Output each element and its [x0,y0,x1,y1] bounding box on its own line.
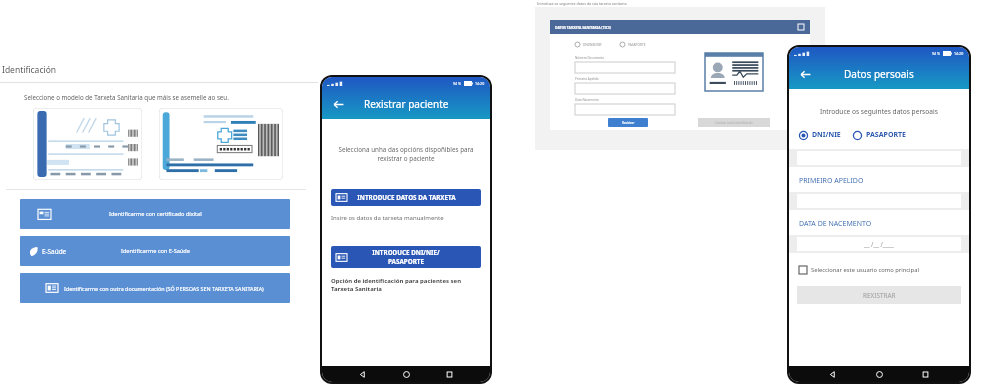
staticText: 14:20 [475,81,485,86]
button[interactable]: Back [795,64,815,84]
staticText: Rexistrar [622,121,635,125]
button[interactable]: INTRODUCE DNI/NIE/ PASAPORTE [331,246,481,268]
staticText: REXISTRAR [863,291,896,300]
other: Home [876,371,883,378]
button[interactable]: E-Saúde [20,236,290,266]
other: Recents [922,371,929,378]
button[interactable]: Seleccionar este usuario como principal [799,266,919,274]
button[interactable]: __ /__ /____ [797,237,961,251]
staticText: Número Documento [575,56,604,60]
staticText: PRIMEIRO APELIDO [799,176,864,186]
staticText: E-Saúde [42,247,67,256]
staticText: DATA DE NACEMENTO [799,219,872,229]
staticText: 14:20 [954,51,964,56]
button[interactable]: Identificarme con certificado dixital [20,199,290,229]
staticText: INTRODUCE DNI/NIE/ PASAPORTE [372,248,440,266]
button[interactable]: Back [328,94,348,114]
other: Home [403,371,410,378]
other: Back [359,371,366,378]
staticText: 94 % [453,81,462,86]
staticText: Rexistrar paciente [364,97,449,111]
staticText: Introduza os seguintes datos da súa tarx… [537,1,628,6]
staticText: INTRODUCE DATOS DA TARXETA [357,193,456,202]
staticText: Identificación [2,64,57,76]
staticText: Primeiro Apelido [575,77,599,81]
staticText: DNI/NIE/NIF [583,43,602,47]
other: Back [829,371,836,378]
staticText: Selecciona unha das opcións dispoñibles … [331,145,481,163]
staticText: Data Nacemento [575,98,599,102]
staticText: 94 % [932,51,941,56]
staticText: __ /__ /____ [864,240,894,248]
other: Recents [446,371,453,378]
staticText: Opción de identificación para pacientes … [331,277,481,293]
staticText: Identificarme con outra documentación (S… [64,285,264,292]
staticText: Introduce os seguintes datos persoais [820,107,938,116]
staticText: DNI/NIE [812,130,841,140]
staticText: Insire os datos da tarxeta manualmente [331,214,444,222]
staticText: DATOS TARXETA SANITARIA (TICS) [555,25,611,30]
button[interactable]: INTRODUCE DATOS DA TARXETA [331,189,481,206]
staticText: Seleccionar este usuario como principal [811,266,919,274]
staticText: Identificarme con certificado dixital [109,210,202,218]
button[interactable]: Identificarme con outra documentación (S… [20,273,290,303]
staticText: Datos persoais [844,67,914,81]
staticText: Seleccione o modelo de Tarxeta Sanitaria… [24,93,229,101]
button[interactable]: REXISTRAR [797,286,961,304]
staticText: Identificarme con E-Saúde [121,247,190,255]
button[interactable]: Rexistrar [608,118,648,127]
staticText: Cambiar modo identificación [715,121,753,125]
staticText: PASAPORTE [628,43,646,47]
button[interactable]: Cambiar modo identificación [698,118,770,127]
staticText: PASAPORTE [866,130,906,140]
